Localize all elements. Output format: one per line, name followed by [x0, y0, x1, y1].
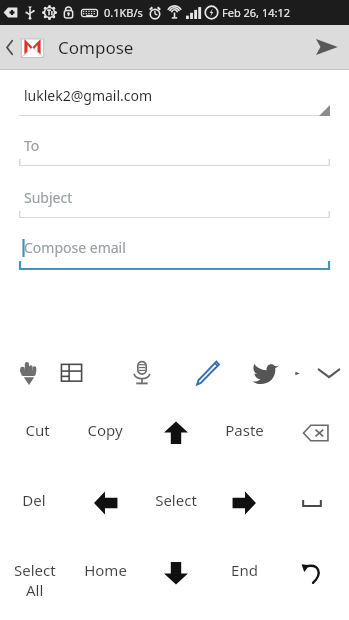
- button[interactable]: Copy: [72, 406, 138, 476]
- button[interactable]: Space: [279, 476, 345, 546]
- button[interactable]: Draw: [188, 354, 226, 392]
- staticText: luklek2@gmail.com: [24, 86, 153, 105]
- staticText: End: [231, 560, 258, 580]
- button[interactable]: Email body: [19, 238, 330, 270]
- button[interactable]: Cut: [4, 406, 70, 476]
- button[interactable]: Move up: [143, 406, 209, 476]
- staticText: All: [26, 580, 44, 600]
- staticText: Subject: [24, 188, 73, 207]
- button[interactable]: Subject: [19, 186, 330, 218]
- staticText: Compose: [58, 36, 134, 59]
- button[interactable]: Move down: [143, 546, 209, 616]
- staticText: Select: [155, 490, 197, 510]
- button[interactable]: Back: [0, 25, 49, 69]
- staticText: Paste: [225, 420, 264, 440]
- staticText: Compose email: [24, 238, 126, 257]
- button[interactable]: Select: [2, 546, 68, 616]
- button[interactable]: Paste: [211, 406, 277, 476]
- button[interactable]: Move right: [211, 476, 277, 546]
- staticText: Del: [22, 490, 46, 510]
- button[interactable]: Voice input: [123, 354, 161, 392]
- staticText: Feb 26, 14:12: [222, 5, 291, 20]
- button[interactable]: Hide keyboard: [310, 354, 348, 392]
- button[interactable]: Undo: [279, 546, 345, 616]
- button[interactable]: Twitter: [246, 354, 286, 392]
- button[interactable]: Send: [303, 25, 349, 69]
- button[interactable]: Backspace: [283, 406, 349, 476]
- staticText: To: [24, 136, 40, 155]
- staticText: Cut: [25, 420, 50, 440]
- button[interactable]: End: [211, 546, 277, 616]
- button[interactable]: To: [19, 134, 330, 166]
- button[interactable]: Handwriting input: [10, 354, 48, 392]
- staticText: Home: [84, 560, 127, 580]
- staticText: 0.1KB/s: [104, 5, 143, 20]
- button[interactable]: Move left: [73, 476, 139, 546]
- staticText: Copy: [87, 420, 123, 440]
- button[interactable]: From account: [19, 86, 330, 116]
- staticText: Select: [14, 560, 56, 580]
- button[interactable]: Del: [1, 476, 67, 546]
- button[interactable]: Input language EN: [54, 354, 90, 392]
- button[interactable]: More options: [286, 354, 309, 392]
- button[interactable]: Home: [72, 546, 138, 616]
- button[interactable]: Select: [143, 476, 209, 546]
